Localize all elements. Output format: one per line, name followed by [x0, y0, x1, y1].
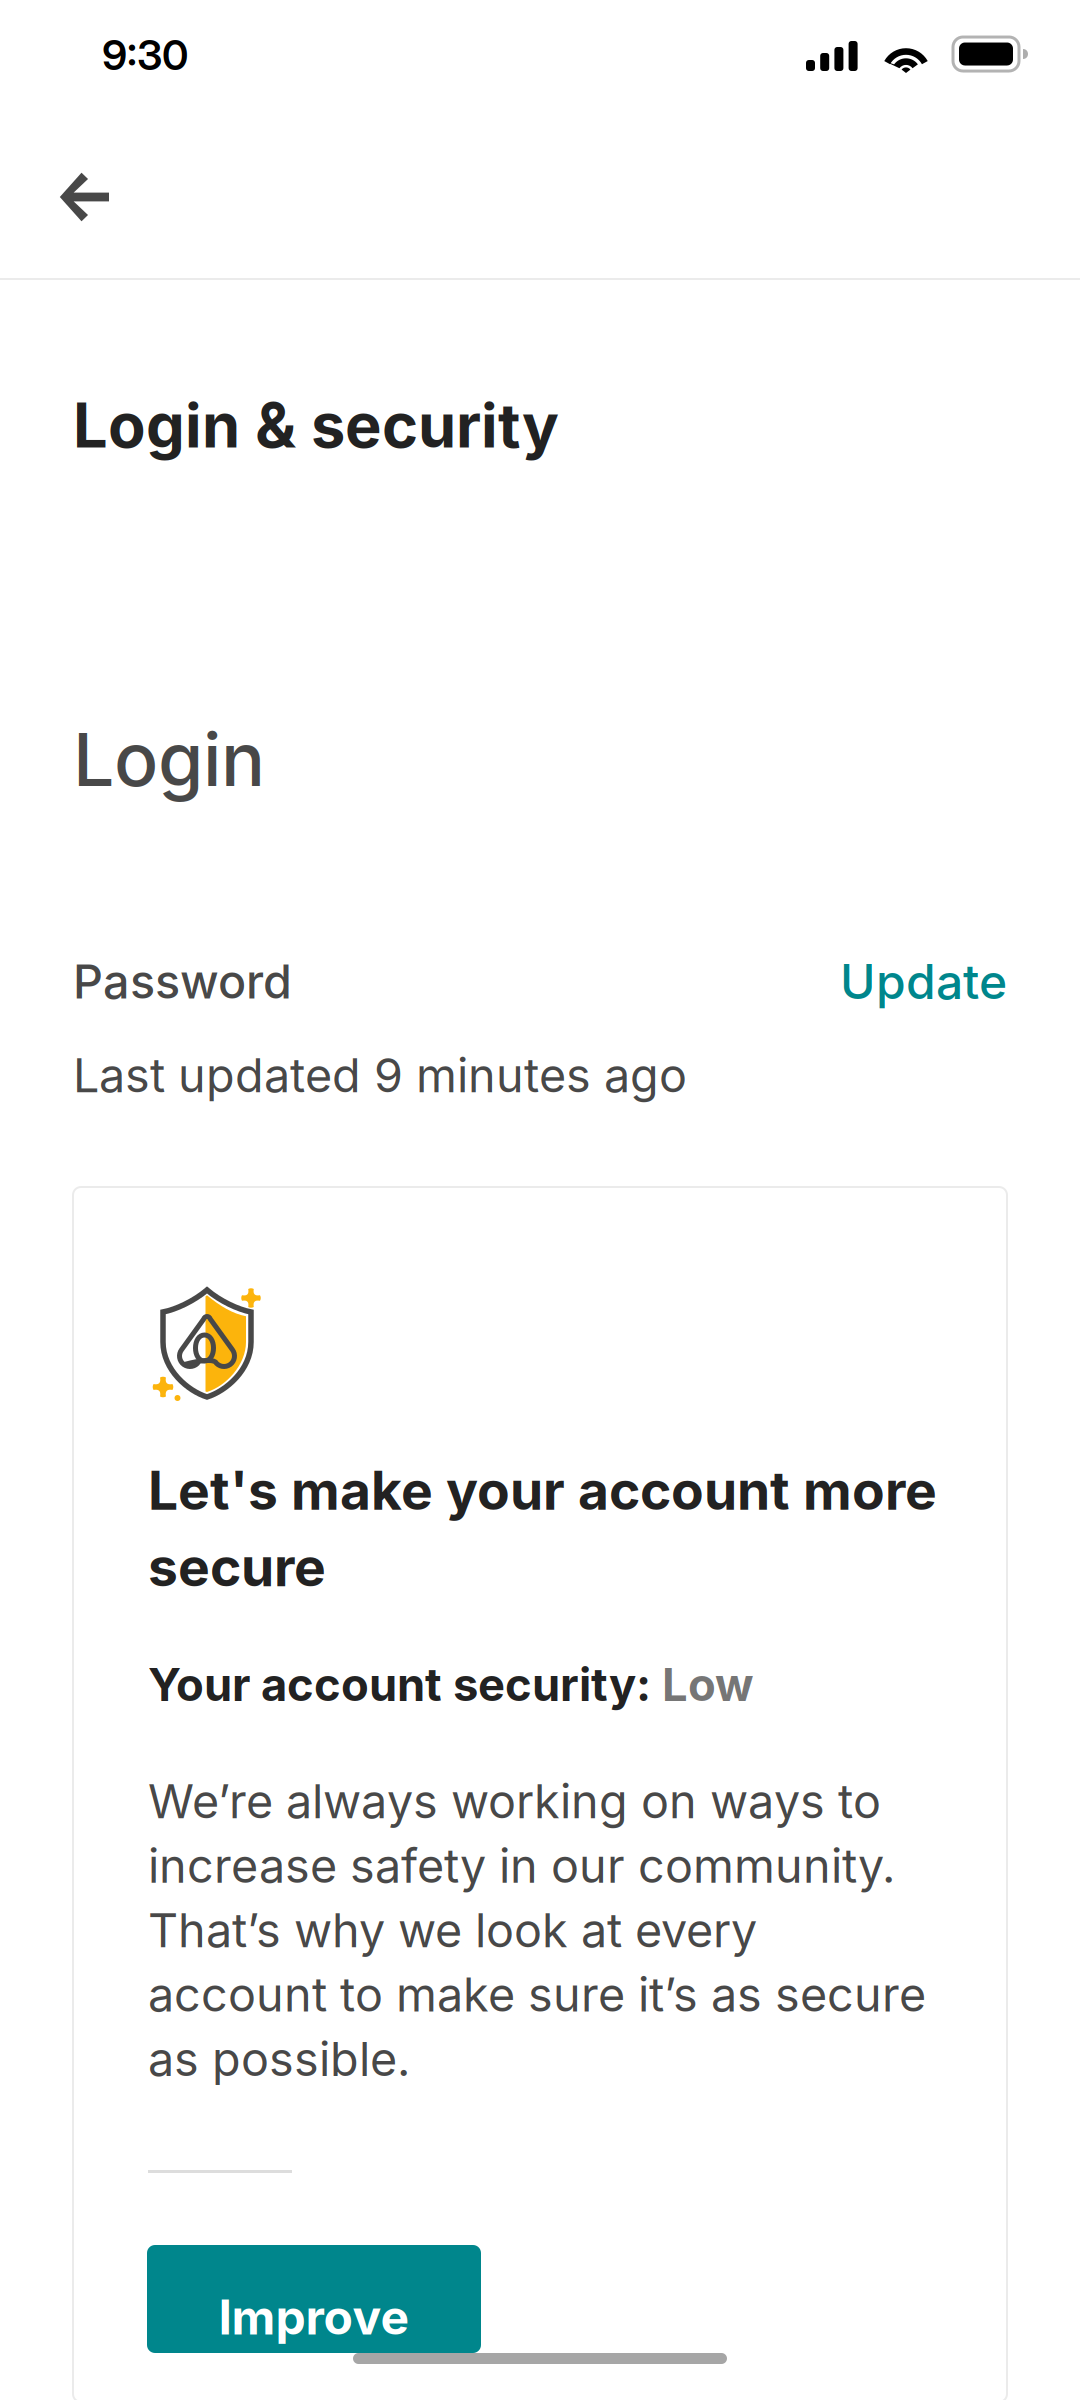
staticText: 9:30 [102, 30, 188, 80]
staticText: Update [840, 952, 1007, 1011]
button[interactable]: Improve [147, 2245, 481, 2353]
staticText: Your account security: [148, 1657, 651, 1712]
staticText: Last updated 9 minutes ago [73, 1047, 687, 1103]
staticText: Low [651, 1657, 754, 1712]
staticText: Let's make your account more secure [148, 1458, 937, 1599]
staticText: Login & security [73, 388, 559, 462]
button[interactable]: Back [0, 108, 210, 278]
staticText: Improve [218, 2288, 409, 2346]
staticText: Password [73, 953, 292, 1010]
staticText: Login [73, 715, 265, 804]
staticText: We’re always working on ways to increase… [148, 1773, 926, 2087]
button[interactable]: Update [840, 948, 1007, 1015]
